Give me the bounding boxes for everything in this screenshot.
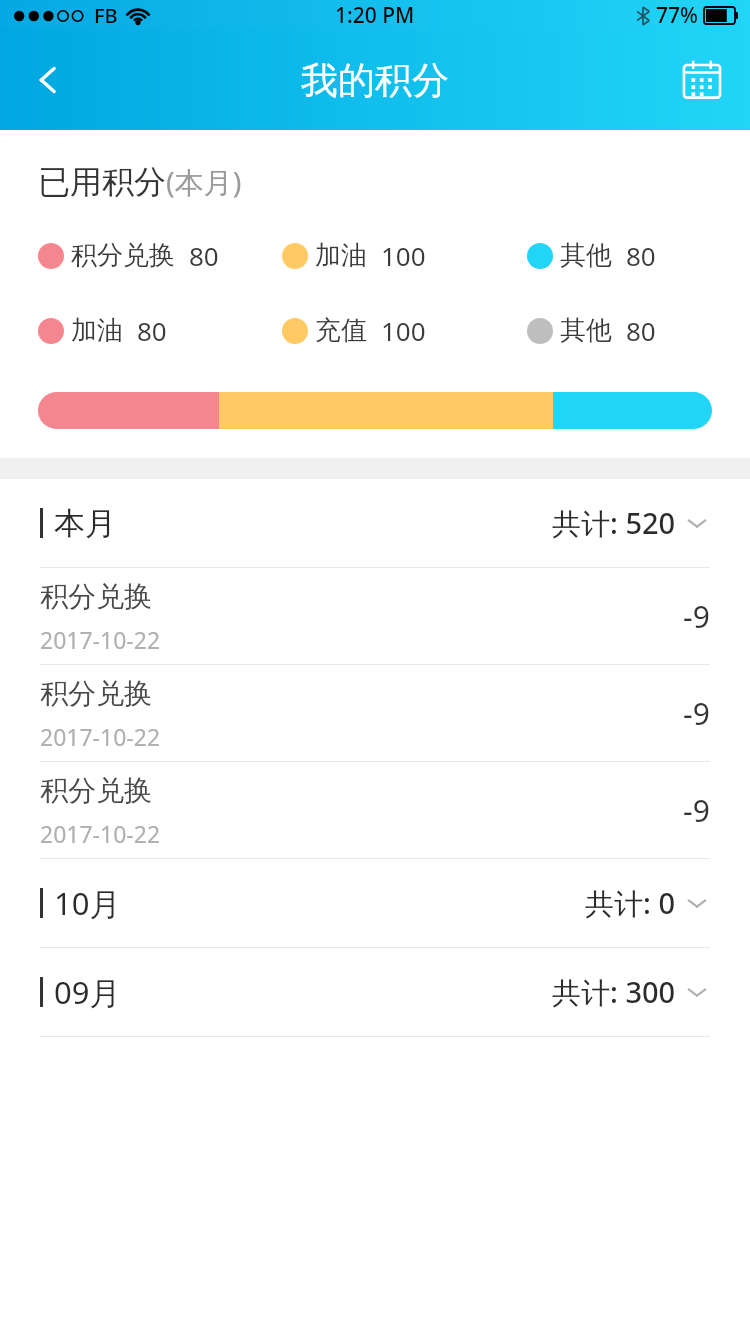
staticText: (本月) xyxy=(166,162,242,202)
staticText: 我的积分 xyxy=(301,57,449,104)
staticText: 100 xyxy=(381,238,426,273)
staticText: 积分兑换 xyxy=(40,579,152,614)
button[interactable]: Calendar xyxy=(654,30,750,130)
staticText: 加油 xyxy=(315,239,367,272)
staticText: 共计: 520 xyxy=(552,503,676,543)
staticText: 80 xyxy=(626,238,656,273)
staticText: 80 xyxy=(189,238,219,273)
staticText: 2017-10-22 xyxy=(40,818,161,849)
staticText: 积分兑换 xyxy=(40,676,152,711)
button[interactable]: 积分兑换 xyxy=(0,568,750,665)
staticText: 其他 xyxy=(560,314,612,347)
staticText: FB xyxy=(94,2,118,29)
staticText: 积分兑换 xyxy=(40,773,152,808)
staticText: 80 xyxy=(137,313,167,348)
button[interactable]: 积分兑换 xyxy=(0,762,750,859)
button[interactable]: 积分兑换 xyxy=(0,665,750,762)
staticText: 77% xyxy=(656,1,698,30)
staticText: 加油 xyxy=(71,314,123,347)
button[interactable]: Back xyxy=(0,30,96,130)
button[interactable]: 09月 xyxy=(0,948,750,1036)
staticText: 09月 xyxy=(54,971,121,1013)
staticText: 2017-10-22 xyxy=(40,624,161,655)
staticText: 充值 xyxy=(315,314,367,347)
staticText: 共计: 0 xyxy=(585,883,676,923)
staticText: 其他 xyxy=(560,239,612,272)
button[interactable]: 10月 xyxy=(0,859,750,947)
staticText: 100 xyxy=(381,313,426,348)
staticText: 1:20 PM xyxy=(335,1,415,30)
staticText: -9 xyxy=(683,596,710,637)
staticText: 80 xyxy=(626,313,656,348)
staticText: 共计: 300 xyxy=(552,972,676,1012)
staticText: -9 xyxy=(683,693,710,734)
staticText: 本月 xyxy=(54,504,116,543)
button[interactable]: 本月 xyxy=(0,479,750,567)
staticText: 已用积分 xyxy=(38,162,166,202)
staticText: 2017-10-22 xyxy=(40,721,161,752)
staticText: -9 xyxy=(683,790,710,831)
staticText: 10月 xyxy=(54,882,121,924)
staticText: 积分兑换 xyxy=(71,239,175,272)
